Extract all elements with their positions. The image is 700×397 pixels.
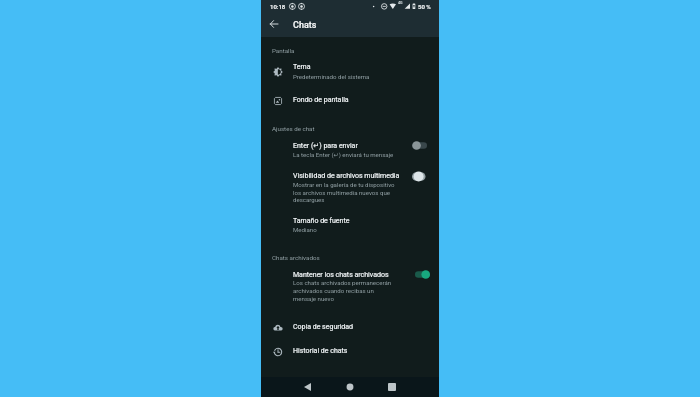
staticText: Pantalla [272,47,295,54]
staticText: Los chats archivados permanecerán [293,279,392,286]
staticText: Visibilidad de archivos multimedia [293,172,400,180]
button[interactable]: Recent apps [382,377,402,397]
staticText: Enter (↵) para enviar [293,142,358,150]
staticText: descargues [293,196,325,203]
staticText: Mostrar en la galería de tu dispositivo [293,181,395,188]
staticText: Mediano [293,226,317,233]
staticText: Copia de seguridad [293,323,354,331]
button[interactable] [261,136,439,162]
staticText: Tamaño de fuente [293,217,350,225]
button[interactable] [261,341,439,362]
button[interactable] [261,58,439,80]
button[interactable]: Back [297,377,317,397]
button[interactable]: Off [412,171,427,182]
button[interactable] [261,166,439,206]
staticText: 10:18 [270,3,286,10]
button[interactable]: Back [264,14,284,34]
staticText: Historial de chats [293,347,348,355]
staticText: Tema [293,63,311,71]
button[interactable]: On [415,269,430,280]
button[interactable] [261,89,439,110]
button[interactable] [261,265,439,305]
button[interactable] [261,211,439,233]
button[interactable] [261,317,439,338]
staticText: La tecla Enter (↵) enviará tu mensaje [293,151,394,158]
staticText: Ajustes de chat [272,125,315,132]
staticText: Chats [293,20,317,31]
staticText: 50 % [418,3,431,10]
button[interactable]: Home [340,377,360,397]
staticText: Predeterminado del sistema [293,73,370,80]
staticText: Chats archivados [272,254,320,261]
staticText: mensaje nuevo [293,295,334,302]
staticText: 4G [398,1,403,5]
staticText: Mantener los chats archivados [293,271,389,279]
staticText: Fondo de pantalla [293,96,349,104]
staticText: archivados cuando recibas un [293,287,374,294]
button[interactable]: Off [412,140,427,151]
staticText: los archivos multimedia nuevos que [293,189,390,196]
